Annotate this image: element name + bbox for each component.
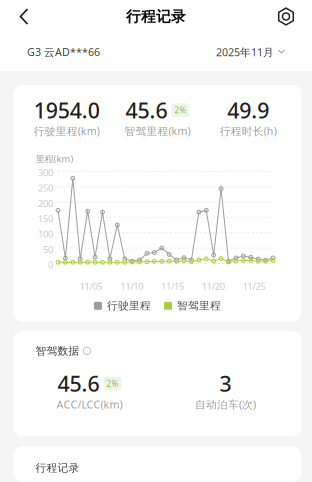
button[interactable]: Settings: [263, 0, 312, 33]
staticText: 150: [38, 212, 53, 225]
staticText: 智驾里程(km): [124, 124, 190, 138]
staticText: 自动泊车(次): [195, 397, 256, 411]
button[interactable]: 2025年11月: [216, 45, 285, 59]
staticText: 行驶里程(km): [34, 124, 100, 138]
staticText: 250: [38, 182, 53, 194]
staticText: 50: [43, 243, 53, 255]
staticText: 100: [38, 228, 53, 240]
staticText: 行程时长(h): [220, 124, 277, 138]
staticText: 300: [38, 166, 53, 179]
staticText: 45.6: [57, 369, 99, 398]
staticText: 1954.0: [34, 96, 100, 124]
staticText: 智驾数据: [35, 344, 79, 357]
staticText: 11/25: [242, 280, 265, 292]
staticText: 2025年11月: [216, 45, 274, 59]
staticText: 行程记录: [126, 7, 186, 25]
staticText: 2%: [106, 378, 118, 389]
staticText: 200: [38, 197, 53, 209]
staticText: 里程(km): [35, 152, 73, 165]
staticText: ACC/LCC(km): [56, 397, 122, 411]
staticText: 11/10: [120, 280, 143, 292]
staticText: 行程记录: [35, 461, 79, 474]
staticText: 11/20: [202, 280, 225, 292]
button[interactable]: Back: [0, 0, 44, 33]
staticText: 2%: [174, 105, 186, 115]
staticText: 智驾里程: [177, 299, 221, 312]
staticText: 49.9: [227, 96, 269, 124]
staticText: G3 云AD***66: [27, 45, 100, 59]
staticText: 11/05: [79, 280, 102, 292]
staticText: 行驶里程: [107, 299, 151, 312]
staticText: 11/15: [161, 280, 184, 292]
staticText: 0: [48, 258, 53, 271]
staticText: 45.6: [125, 96, 167, 124]
staticText: 3: [219, 369, 231, 398]
